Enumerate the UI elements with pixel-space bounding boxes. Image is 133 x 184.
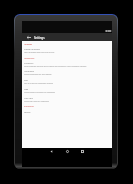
staticText: Version [24, 111, 31, 114]
staticText: Choose notification for each website [24, 73, 114, 75]
button[interactable]: Alert Time [22, 95, 112, 101]
button[interactable]: Sync [22, 77, 112, 83]
staticText: Choose alert time for notification [24, 100, 114, 102]
button[interactable]: Home [61, 147, 73, 155]
button[interactable]: Notification [22, 68, 112, 74]
staticText: Choose things or timeline for notificati… [24, 91, 114, 93]
button[interactable]: Type [22, 86, 112, 92]
staticText: Change Language [24, 48, 40, 51]
button[interactable]: Back [45, 147, 57, 155]
staticText: Conditions [24, 62, 34, 65]
staticText: Alert Time [24, 97, 33, 100]
staticText: Sync as a time for notification anytime [24, 82, 114, 84]
staticText: Lorem awesome the label and to display t… [24, 65, 114, 67]
button[interactable]: Recent apps [76, 147, 88, 155]
button[interactable]: Change Language [22, 46, 112, 52]
staticText: Type [24, 88, 29, 91]
staticText: Notification [24, 70, 35, 73]
button[interactable]: Version [22, 109, 112, 115]
staticText: Select language which was used for app [24, 51, 114, 53]
staticText: Settings [34, 36, 45, 40]
staticText: Notifications [24, 57, 35, 59]
staticText: Information [24, 105, 34, 107]
staticText: Language [24, 43, 33, 45]
button[interactable]: Conditions [22, 60, 112, 66]
button[interactable]: Navigate up [25, 33, 33, 42]
staticText: Sync [24, 79, 28, 82]
